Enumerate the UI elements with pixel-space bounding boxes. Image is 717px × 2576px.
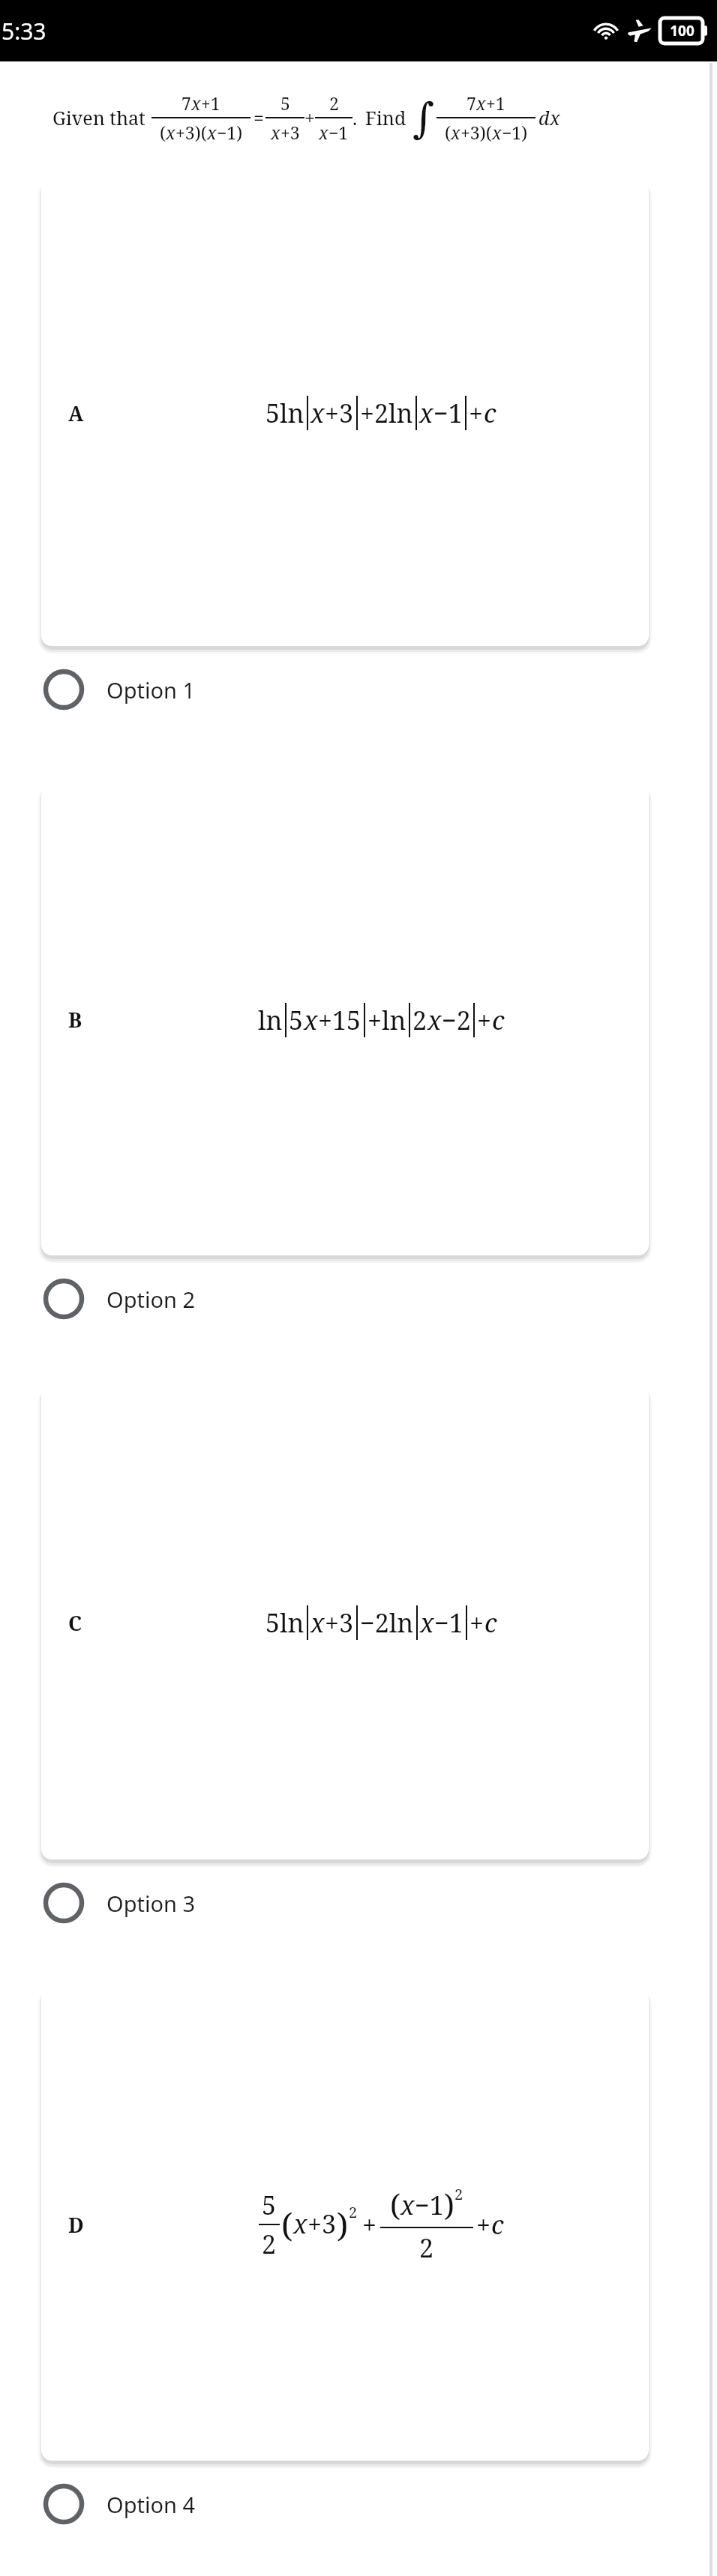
staticText: +ln bbox=[367, 1003, 406, 1037]
staticText: c bbox=[484, 396, 496, 430]
staticText: 5 bbox=[289, 1003, 304, 1037]
staticText: x bbox=[166, 121, 175, 144]
staticText: + bbox=[469, 396, 484, 430]
staticText: x bbox=[400, 2188, 415, 2222]
staticText: x bbox=[207, 121, 217, 144]
staticText: 5:33 bbox=[1, 16, 46, 46]
staticText: +2ln bbox=[360, 396, 413, 430]
staticText: 2 bbox=[454, 2184, 463, 2204]
staticText: 100 bbox=[670, 21, 694, 40]
staticText: 5 bbox=[262, 2188, 277, 2222]
staticText: ) bbox=[444, 2184, 454, 2224]
staticText: ( bbox=[160, 121, 166, 144]
staticText: x bbox=[427, 1003, 442, 1037]
button[interactable]: Option 3 bbox=[0, 1859, 717, 1946]
staticText: 5ln bbox=[265, 396, 304, 430]
staticText: ( bbox=[445, 121, 451, 144]
other: Option 1 bbox=[43, 669, 85, 711]
staticText: −1) bbox=[502, 121, 528, 144]
staticText: 5 bbox=[280, 91, 290, 115]
staticText: ∫ bbox=[412, 94, 435, 142]
staticText: Given that bbox=[52, 105, 145, 130]
staticText: x bbox=[271, 121, 280, 144]
staticText: Option 3 bbox=[106, 1889, 196, 1918]
button[interactable]: B bbox=[41, 784, 649, 1255]
staticText: Option 1 bbox=[106, 675, 196, 705]
staticText: +3)( bbox=[175, 121, 207, 144]
staticText: x bbox=[191, 91, 201, 115]
staticText: −2 bbox=[442, 1003, 471, 1037]
staticText: + bbox=[469, 1605, 484, 1640]
staticText: Find bbox=[365, 105, 406, 130]
staticText: −1) bbox=[217, 121, 243, 144]
staticText: x bbox=[304, 1003, 318, 1037]
staticText: x bbox=[476, 91, 486, 115]
staticText: −1 bbox=[328, 121, 349, 144]
staticText: Option 4 bbox=[106, 2490, 196, 2519]
button[interactable]: C bbox=[41, 1386, 649, 1859]
button[interactable]: A bbox=[41, 180, 649, 646]
staticText: +15 bbox=[318, 1003, 361, 1037]
staticText: +3 bbox=[280, 121, 300, 144]
staticText: x bbox=[492, 121, 502, 144]
staticText: 2 bbox=[349, 2202, 358, 2222]
staticText: c bbox=[484, 1605, 497, 1640]
other: Option 4 bbox=[43, 2483, 85, 2525]
staticText: −1 bbox=[434, 1605, 463, 1640]
staticText: . bbox=[352, 105, 358, 130]
staticText: x bbox=[310, 396, 325, 430]
staticText: x bbox=[550, 105, 560, 130]
staticText: + bbox=[304, 105, 315, 130]
staticText: C bbox=[68, 1609, 82, 1637]
staticText: 5ln bbox=[265, 1605, 304, 1640]
staticText: +3 bbox=[307, 2207, 337, 2241]
staticText: +3 bbox=[325, 1605, 354, 1640]
staticText: 7 bbox=[181, 91, 191, 115]
staticText: x bbox=[420, 1605, 434, 1640]
staticText: d bbox=[538, 105, 550, 130]
staticText: c bbox=[491, 2207, 504, 2242]
button[interactable]: Option 2 bbox=[0, 1255, 717, 1342]
staticText: +1 bbox=[201, 91, 220, 115]
staticText: x bbox=[419, 396, 433, 430]
staticText: ) bbox=[337, 2202, 349, 2247]
staticText: + bbox=[476, 2207, 491, 2242]
button[interactable]: Option 4 bbox=[0, 2461, 717, 2548]
staticText: −1 bbox=[433, 396, 463, 430]
other: Option 2 bbox=[43, 1278, 85, 1320]
staticText: x bbox=[451, 121, 460, 144]
staticText: c bbox=[492, 1003, 505, 1037]
staticText: +3)( bbox=[460, 121, 492, 144]
staticText: ( bbox=[390, 2184, 400, 2224]
staticText: 2 bbox=[412, 1003, 427, 1037]
staticText: +3 bbox=[325, 396, 354, 430]
staticText: 7 bbox=[466, 91, 476, 115]
staticText: B bbox=[68, 1006, 82, 1034]
staticText: +1 bbox=[486, 91, 505, 115]
staticText: + bbox=[477, 1003, 492, 1037]
staticText: Option 2 bbox=[106, 1285, 196, 1314]
staticText: ln bbox=[258, 1003, 283, 1037]
staticText: x bbox=[293, 2207, 307, 2241]
staticText: 2 bbox=[419, 2230, 434, 2265]
other: Option 3 bbox=[43, 1882, 85, 1924]
staticText: 2 bbox=[329, 91, 339, 115]
staticText: x bbox=[310, 1605, 325, 1640]
staticText: D bbox=[68, 2211, 84, 2239]
staticText: 2 bbox=[262, 2227, 277, 2261]
staticText: = bbox=[253, 105, 264, 130]
staticText: −2ln bbox=[360, 1605, 414, 1640]
staticText: A bbox=[68, 399, 84, 427]
button[interactable]: D bbox=[41, 1988, 649, 2461]
button[interactable]: Option 1 bbox=[0, 646, 717, 733]
staticText: + bbox=[362, 2207, 377, 2242]
staticText: −1 bbox=[415, 2188, 444, 2222]
staticText: ( bbox=[281, 2202, 293, 2247]
staticText: x bbox=[319, 121, 328, 144]
